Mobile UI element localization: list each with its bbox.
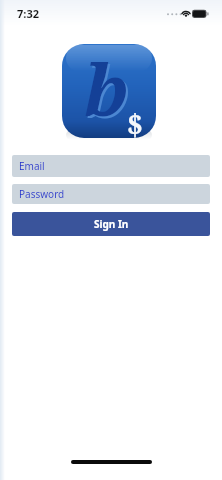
button[interactable]: Sign In [12, 212, 210, 236]
staticText: Sign In [94, 217, 129, 231]
staticText: 7:32 [17, 6, 39, 21]
staticText: b [84, 44, 129, 133]
staticText: Password [19, 187, 65, 201]
staticText: b [86, 44, 131, 135]
staticText: Email [19, 159, 45, 173]
button[interactable]: Email [12, 155, 210, 177]
button[interactable]: Password [12, 184, 210, 204]
staticText: $ [127, 105, 143, 138]
